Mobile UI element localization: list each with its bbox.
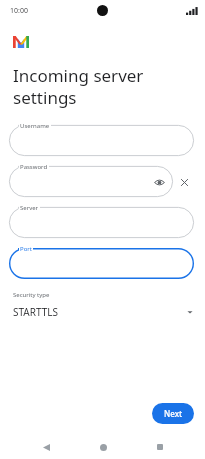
staticText: Security type [13, 291, 50, 299]
staticText: Password [20, 163, 48, 171]
button[interactable]: Show password [153, 176, 165, 188]
button[interactable]: Username [9, 125, 194, 156]
staticText: Server [20, 204, 39, 212]
staticText: Incoming server settings [13, 64, 144, 109]
button[interactable]: Home [91, 435, 115, 459]
staticText: 10:00 [10, 6, 28, 16]
staticText: Port [20, 245, 32, 253]
button[interactable]: Port [9, 248, 194, 279]
staticText: STARTTLS [13, 305, 59, 319]
staticText: Next [164, 408, 183, 419]
staticText: Username [20, 122, 50, 130]
button[interactable]: Clear password [173, 171, 195, 193]
button[interactable]: Security type [0, 291, 205, 319]
button[interactable]: Back [34, 435, 58, 459]
button[interactable]: Next [152, 403, 194, 424]
button[interactable]: Password [9, 166, 173, 197]
button[interactable]: Recent apps [148, 435, 172, 459]
button[interactable]: Server [9, 207, 194, 238]
